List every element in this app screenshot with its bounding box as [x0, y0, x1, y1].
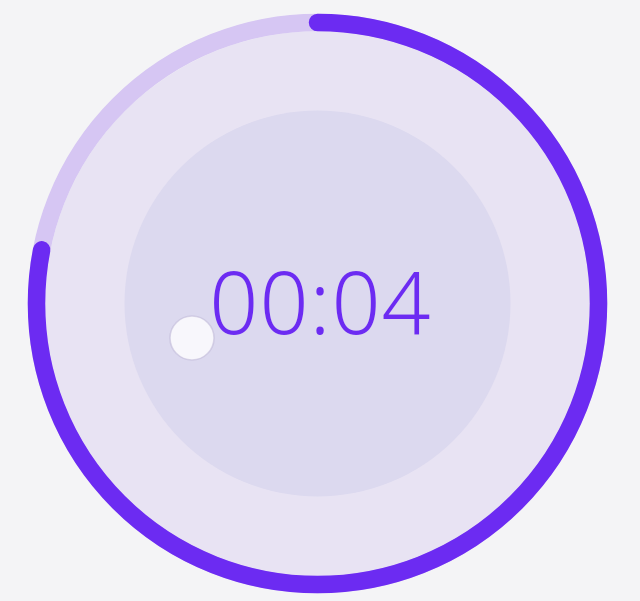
- staticText: 00:04: [209, 242, 432, 359]
- button[interactable]: Timer, 00:04 remaining. Tap to pause: [0, 0, 640, 601]
